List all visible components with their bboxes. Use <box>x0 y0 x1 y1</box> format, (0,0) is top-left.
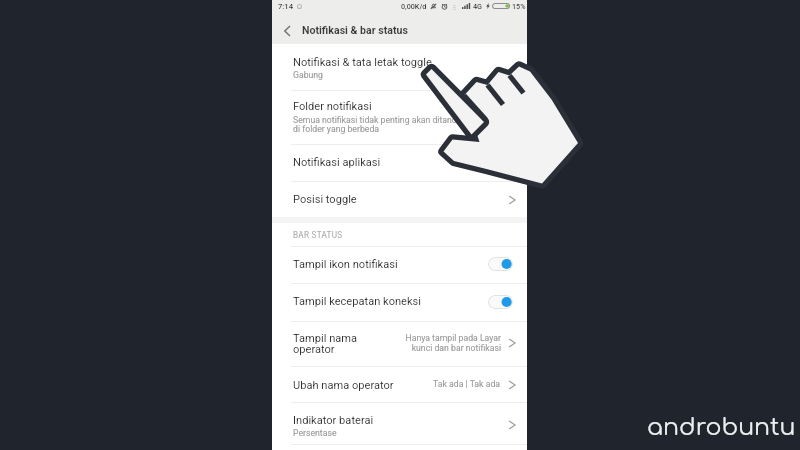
staticText: 15% <box>512 2 526 10</box>
staticText: Folder notifikasi <box>293 100 372 113</box>
staticText: Tampil ikon notifikasi <box>293 258 398 271</box>
staticText: Notifikasi & bar status <box>302 24 408 36</box>
button[interactable] <box>272 321 527 366</box>
staticText: 7:14 <box>278 2 293 11</box>
button[interactable] <box>272 181 527 218</box>
staticText: 0,00K/d <box>401 2 427 10</box>
button[interactable]: Open <box>508 338 518 348</box>
staticText: Tak ada | Tak ada <box>433 379 500 389</box>
button[interactable] <box>272 402 527 443</box>
staticText: Ubah nama operator <box>293 379 394 392</box>
button[interactable] <box>272 90 527 144</box>
button[interactable]: Open <box>508 380 518 390</box>
staticText: Hanya tampil pada Layar <box>405 333 501 343</box>
button[interactable]: Toggle switch <box>488 295 513 309</box>
staticText: Tampil kecepatan koneksi <box>293 295 422 308</box>
button[interactable]: Back <box>275 19 299 43</box>
staticText: Semua notifikasi tidak penting akan dita… <box>293 115 464 125</box>
staticText: Gabung <box>293 70 323 80</box>
button[interactable] <box>272 366 527 403</box>
button[interactable] <box>272 283 527 321</box>
button[interactable] <box>272 246 527 283</box>
staticText: Persentase <box>293 428 337 438</box>
staticText: operator <box>293 343 335 356</box>
button[interactable] <box>272 144 527 181</box>
staticText: 4G <box>473 2 482 10</box>
staticText: Posisi toggle <box>293 193 357 206</box>
button[interactable]: Open <box>508 420 518 430</box>
button[interactable]: Open <box>508 195 518 205</box>
staticText: Notifikasi & tata letak toggle <box>293 56 432 69</box>
button[interactable] <box>272 44 527 90</box>
staticText: Notifikasi aplikasi <box>293 156 381 169</box>
staticText: kunci dan bar notifikasi <box>411 343 501 353</box>
button[interactable]: Toggle switch <box>488 257 513 271</box>
staticText: Indikator baterai <box>293 414 374 427</box>
staticText: androbuntu <box>647 414 796 440</box>
staticText: BAR STATUS <box>293 230 343 240</box>
staticText: di folder yang berbeda <box>293 124 380 134</box>
staticText: Tampil nama <box>293 332 358 345</box>
staticText: ⠿ <box>452 4 457 11</box>
